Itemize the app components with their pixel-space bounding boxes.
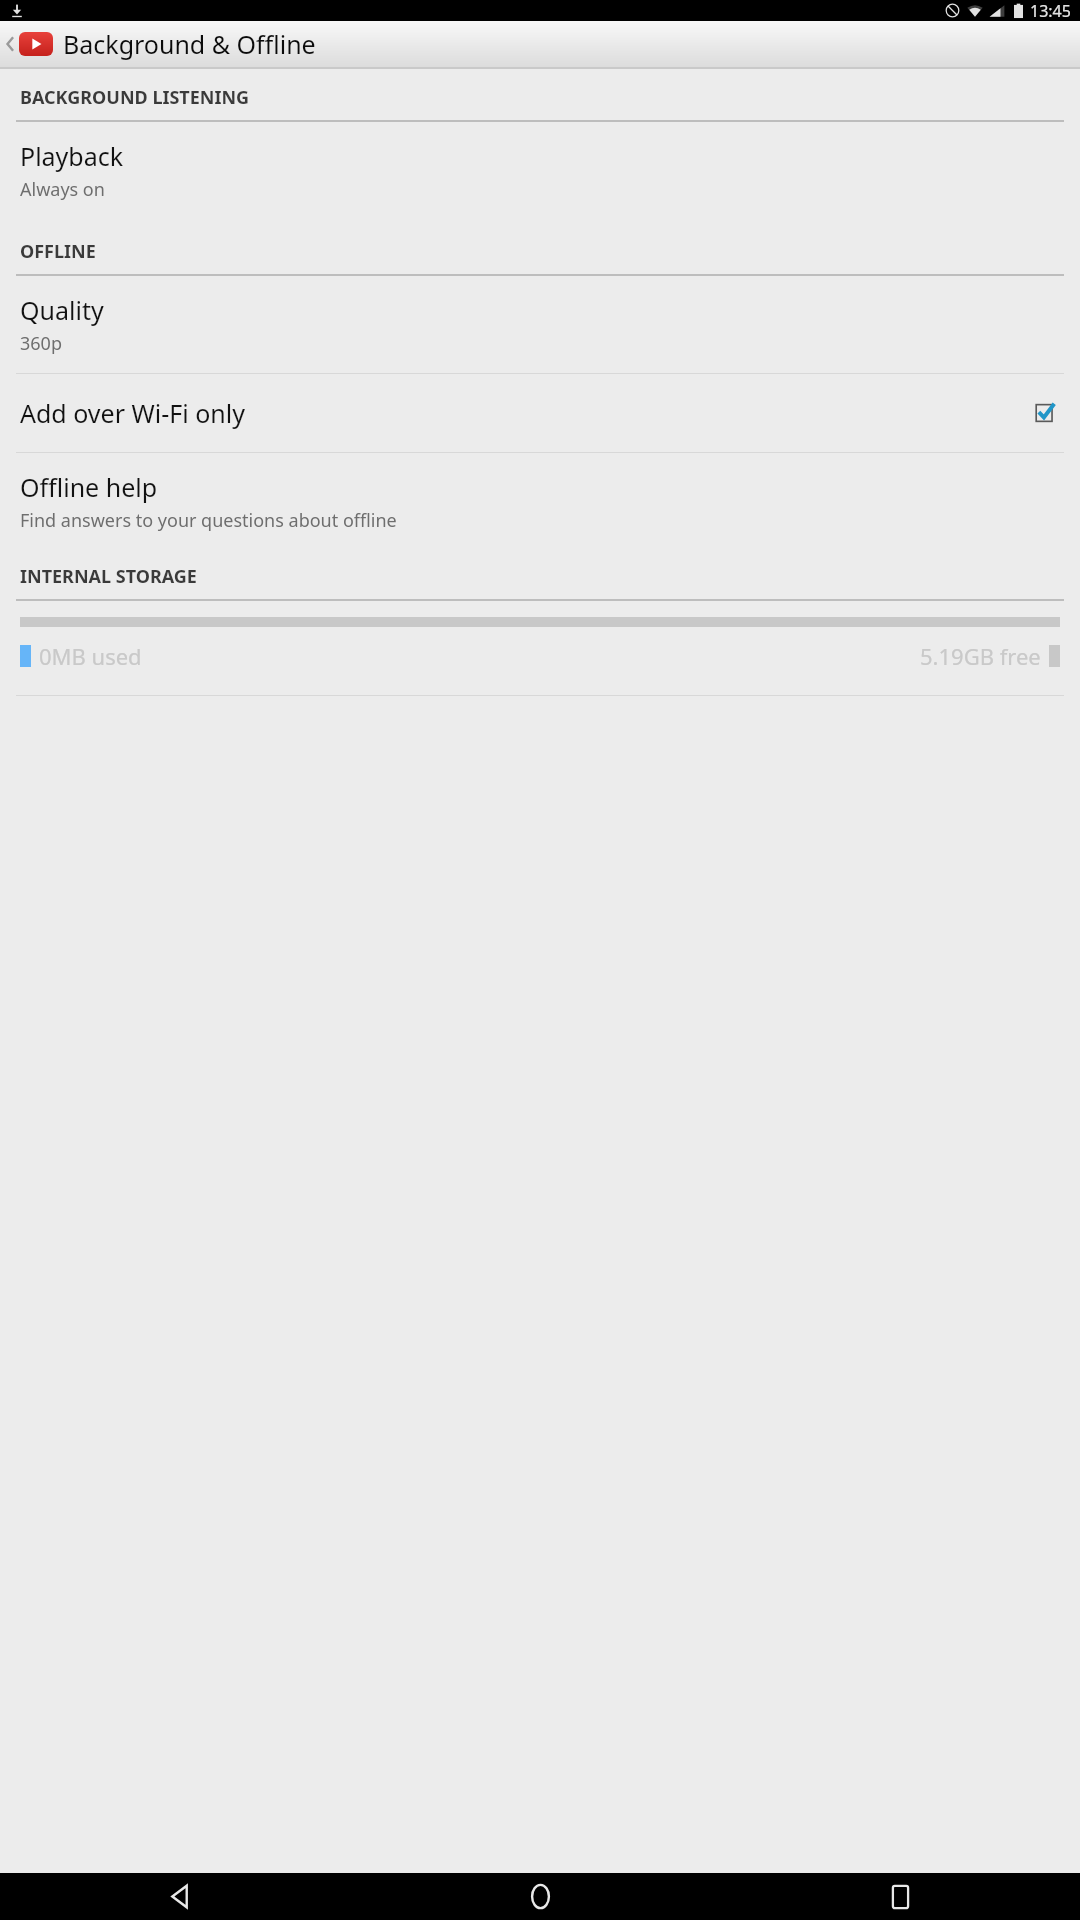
staticText: Background & Offline <box>63 27 316 61</box>
button[interactable]: Add over Wi-Fi only <box>0 374 1080 452</box>
staticText: Always on <box>20 177 105 202</box>
button[interactable]: Offline help <box>0 453 1080 550</box>
staticText: 13:45 <box>1030 0 1071 21</box>
staticText: 0MB used <box>39 641 142 671</box>
button[interactable]: Home <box>360 1873 720 1920</box>
button[interactable]: Navigate up <box>0 23 324 65</box>
other: Navigate up <box>3 31 17 57</box>
staticText: Quality <box>20 293 104 327</box>
staticText: Offline help <box>20 470 158 504</box>
button[interactable]: Playback <box>0 122 1080 219</box>
other: Add over Wi-Fi only checkbox, checked <box>1034 402 1056 424</box>
staticText: OFFLINE <box>20 239 96 264</box>
button[interactable]: Quality <box>0 276 1080 373</box>
button[interactable]: Back <box>0 1873 360 1920</box>
staticText: 360p <box>20 331 62 356</box>
staticText: Find answers to your questions about off… <box>20 508 397 533</box>
staticText: BACKGROUND LISTENING <box>20 85 250 110</box>
staticText: 5.19GB free <box>920 641 1041 671</box>
staticText: Add over Wi-Fi only <box>20 396 1034 430</box>
staticText: Playback <box>20 139 124 173</box>
button[interactable]: Recent apps <box>720 1873 1080 1920</box>
staticText: INTERNAL STORAGE <box>20 564 197 589</box>
